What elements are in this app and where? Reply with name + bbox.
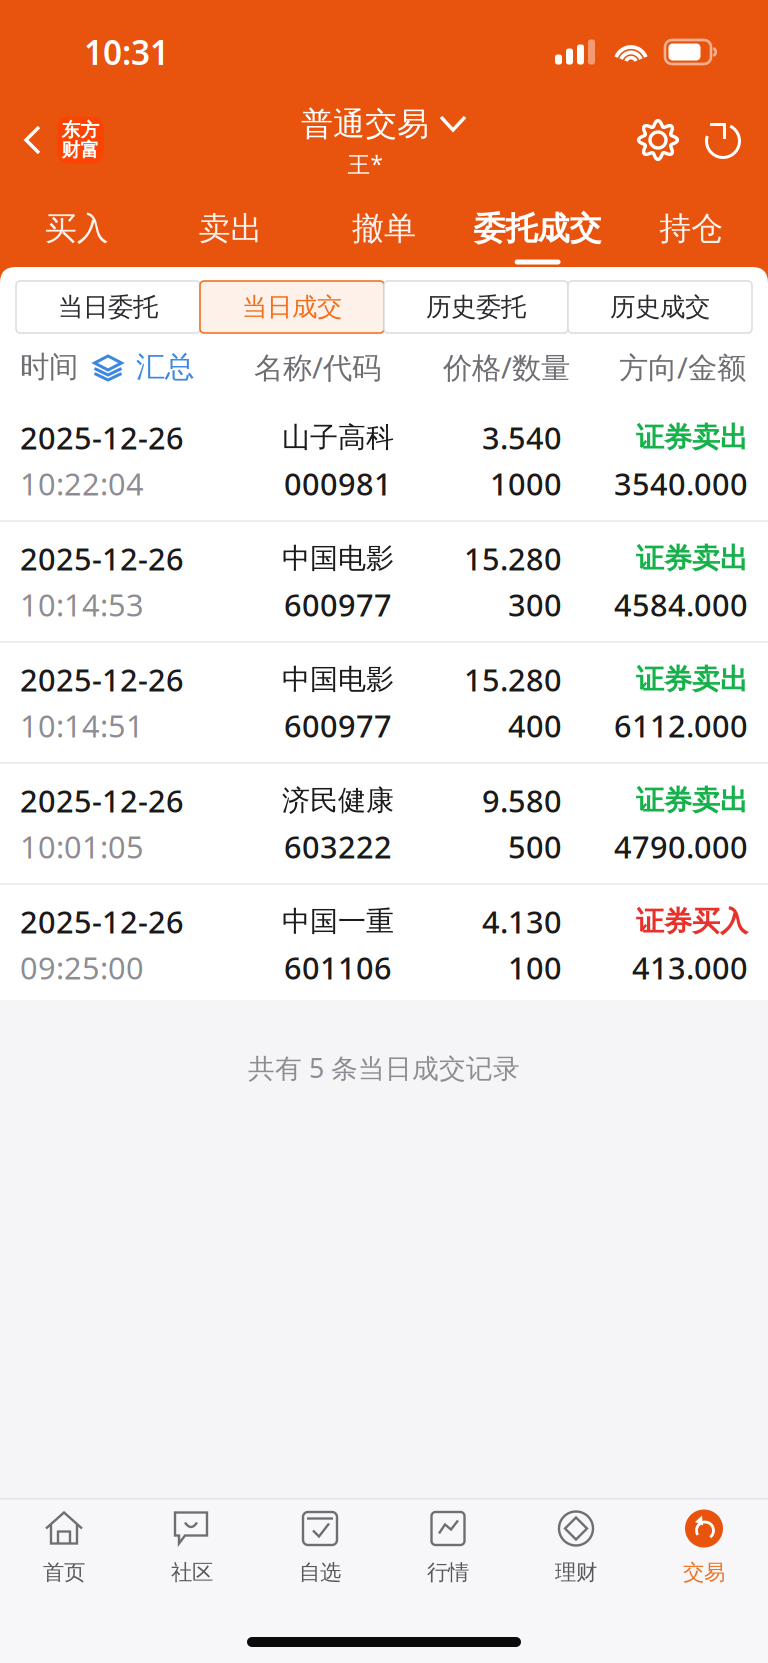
button[interactable]: 2025-12-26 bbox=[0, 643, 768, 762]
button[interactable]: 2025-12-26 bbox=[0, 522, 768, 641]
staticText: 601106 bbox=[284, 947, 392, 988]
button[interactable]: 社区 bbox=[128, 1499, 256, 1597]
staticText: 中国电影 bbox=[282, 541, 394, 576]
staticText: 买入 bbox=[45, 209, 109, 248]
button[interactable]: 买入 bbox=[0, 190, 154, 267]
button[interactable]: 历史委托 bbox=[384, 281, 568, 333]
staticText: 600977 bbox=[284, 705, 392, 746]
staticText: 证券买入 bbox=[636, 904, 748, 939]
staticText: 东方 bbox=[61, 118, 99, 141]
staticText: 济民健康 bbox=[282, 783, 394, 818]
staticText: 10:14:53 bbox=[20, 584, 144, 625]
staticText: 4.130 bbox=[482, 901, 562, 942]
button[interactable]: 卖出 bbox=[154, 190, 307, 267]
staticText: 400 bbox=[508, 705, 562, 746]
staticText: 撤单 bbox=[352, 209, 416, 248]
staticText: 证券卖出 bbox=[636, 662, 748, 697]
staticText: 15.280 bbox=[464, 659, 562, 700]
button[interactable]: 历史成交 bbox=[568, 281, 752, 333]
staticText: 10:22:04 bbox=[20, 463, 144, 504]
button[interactable]: 委托成交 bbox=[461, 190, 614, 267]
button[interactable]: 普通交易 bbox=[301, 90, 467, 190]
staticText: 证券卖出 bbox=[636, 783, 748, 818]
button[interactable]: 自选 bbox=[256, 1499, 384, 1597]
staticText: 000981 bbox=[284, 463, 392, 504]
button[interactable]: 行情 bbox=[384, 1499, 512, 1597]
staticText: 2025-12-26 bbox=[20, 901, 184, 942]
staticText: 10:01:05 bbox=[20, 826, 144, 867]
staticText: 600977 bbox=[284, 584, 392, 625]
staticText: 中国一重 bbox=[282, 904, 394, 939]
button[interactable]: 交易 bbox=[640, 1499, 768, 1597]
staticText: 500 bbox=[508, 826, 562, 867]
staticText: 持仓 bbox=[659, 209, 723, 248]
staticText: 9.580 bbox=[482, 780, 562, 821]
staticText: 4790.000 bbox=[614, 826, 748, 867]
staticText: 09:25:00 bbox=[20, 947, 144, 988]
staticText: 10:31 bbox=[84, 30, 169, 74]
staticText: 证券卖出 bbox=[636, 541, 748, 576]
staticText: 普通交易 bbox=[301, 104, 429, 144]
staticText: 自选 bbox=[299, 1559, 341, 1586]
staticText: 中国电影 bbox=[282, 662, 394, 697]
staticText: 当日成交 bbox=[242, 291, 342, 322]
staticText: 4584.000 bbox=[614, 584, 748, 625]
staticText: 王* bbox=[347, 149, 382, 179]
staticText: 理财 bbox=[555, 1559, 597, 1586]
staticText: 首页 bbox=[43, 1559, 85, 1586]
button[interactable]: 首页 bbox=[0, 1499, 128, 1597]
staticText: 2025-12-26 bbox=[20, 538, 184, 579]
staticText: 社区 bbox=[171, 1559, 213, 1586]
staticText: 方向/金额 bbox=[619, 347, 746, 386]
staticText: 2025-12-26 bbox=[20, 417, 184, 458]
button[interactable]: 2025-12-26 bbox=[0, 401, 768, 520]
staticText: 交易 bbox=[683, 1559, 725, 1586]
button[interactable]: 持仓 bbox=[614, 190, 768, 267]
staticText: 2025-12-26 bbox=[20, 659, 184, 700]
staticText: 历史成交 bbox=[610, 291, 710, 322]
button[interactable]: 当日委托 bbox=[16, 281, 200, 333]
staticText: 财富 bbox=[61, 138, 99, 161]
staticText: 行情 bbox=[427, 1559, 469, 1586]
button[interactable]: 撤单 bbox=[307, 190, 461, 267]
staticText: 1000 bbox=[490, 463, 562, 504]
staticText: 证券卖出 bbox=[636, 420, 748, 455]
staticText: 3540.000 bbox=[614, 463, 748, 504]
staticText: 15.280 bbox=[464, 538, 562, 579]
staticText: 2025-12-26 bbox=[20, 780, 184, 821]
button[interactable]: 理财 bbox=[512, 1499, 640, 1597]
button[interactable]: 2025-12-26 bbox=[0, 764, 768, 883]
button[interactable]: 设置 bbox=[636, 118, 680, 162]
button[interactable]: 当日成交 bbox=[200, 281, 384, 333]
staticText: 委托成交 bbox=[474, 209, 602, 248]
staticText: 100 bbox=[508, 947, 562, 988]
staticText: 共有 5 条当日成交记录 bbox=[248, 1050, 520, 1085]
staticText: 时间 bbox=[20, 349, 78, 385]
button[interactable]: 刷新 bbox=[704, 118, 742, 162]
staticText: 当日委托 bbox=[58, 291, 158, 322]
staticText: 卖出 bbox=[198, 209, 262, 248]
staticText: 603222 bbox=[284, 826, 392, 867]
staticText: 300 bbox=[508, 584, 562, 625]
staticText: 6112.000 bbox=[614, 705, 748, 746]
button[interactable]: 2025-12-26 bbox=[0, 885, 768, 1004]
staticText: 3.540 bbox=[482, 417, 562, 458]
staticText: 名称/代码 bbox=[254, 347, 381, 386]
staticText: 413.000 bbox=[632, 947, 748, 988]
staticText: 10:14:51 bbox=[20, 705, 144, 746]
staticText: 山子高科 bbox=[282, 420, 394, 455]
staticText: 汇总 bbox=[136, 349, 194, 385]
button[interactable]: 返回 bbox=[0, 90, 178, 190]
staticText: 历史委托 bbox=[426, 291, 526, 322]
staticText: 价格/数量 bbox=[443, 347, 570, 386]
